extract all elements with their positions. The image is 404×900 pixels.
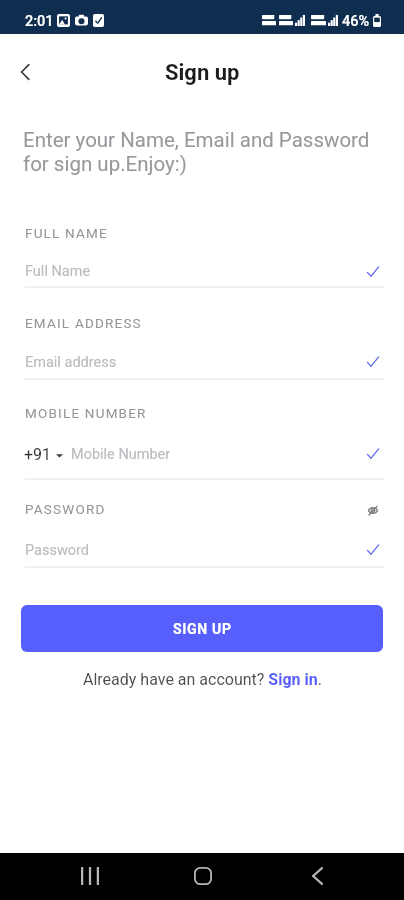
staticText: Enter your Name, Email and Password for … (23, 128, 370, 176)
staticText: Password (25, 542, 90, 559)
button[interactable]: Show password (363, 500, 383, 521)
staticText: Full Name (25, 263, 91, 280)
staticText: 2:01 (25, 13, 54, 30)
staticText: Already have an account? Sign in. (83, 670, 322, 689)
staticText: SIGN UP (173, 621, 232, 637)
button[interactable]: SIGN UP (21, 605, 383, 652)
button[interactable]: Recent apps (68, 854, 112, 898)
staticText: PASSWORD (25, 501, 106, 517)
button[interactable]: Back (7, 54, 43, 90)
button[interactable]: Home (181, 854, 225, 898)
button[interactable]: Back (295, 854, 339, 898)
button[interactable]: Already have an account? Sign in. (79, 668, 326, 691)
staticText: 46% (342, 13, 370, 30)
staticText: Mobile Number (71, 446, 171, 463)
staticText: FULL NAME (25, 225, 108, 241)
staticText: EMAIL ADDRESS (25, 315, 142, 331)
staticText: MOBILE NUMBER (25, 405, 147, 421)
staticText: Sign up (165, 60, 240, 86)
staticText: Email address (25, 354, 117, 371)
staticText: +91 (24, 445, 52, 464)
